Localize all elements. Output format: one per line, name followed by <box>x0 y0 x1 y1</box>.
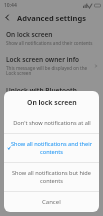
staticText: Show all notifications but hide contents <box>4 169 99 185</box>
staticText: Show all notifications and their content… <box>4 140 99 156</box>
button[interactable]: Toggle off <box>83 127 98 135</box>
staticText: Lock screen owner info <box>6 55 80 64</box>
button[interactable]: Lock screen owner info <box>0 50 103 81</box>
button[interactable]: Smart cover mode <box>0 115 103 146</box>
staticText: Cancel <box>42 198 61 206</box>
button[interactable]: Show all notifications but hide contents <box>4 163 99 191</box>
staticText: Lock or unlock the phone automatically u… <box>6 130 80 142</box>
staticText: Unlock with Bluetooth device <box>6 86 91 104</box>
staticText: Advanced settings <box>17 13 86 23</box>
staticText: This message will be displayed on the Lo… <box>6 65 91 77</box>
button[interactable]: Show all notifications and their content… <box>4 134 99 162</box>
button[interactable]: Cancel <box>4 192 99 212</box>
staticText: Limit touch gestures when placed in a po… <box>6 161 80 173</box>
staticText: Pocket mode <box>6 151 48 160</box>
button[interactable]: On lock screen <box>0 25 103 50</box>
staticText: 10:44 <box>4 2 17 9</box>
staticText: On lock screen <box>6 30 53 39</box>
staticText: Smart cover mode <box>6 120 64 129</box>
button[interactable]: Don't show notifications at all <box>4 113 99 133</box>
button[interactable]: Pocket mode <box>0 146 103 177</box>
button[interactable]: Back <box>0 10 15 25</box>
staticText: Don't show notifications at all <box>13 119 91 127</box>
button[interactable]: Unlock with Bluetooth device <box>0 81 103 115</box>
button[interactable]: Toggle on <box>83 158 98 166</box>
staticText: On lock screen <box>27 98 77 107</box>
staticText: Show all notifications and their content… <box>6 40 93 46</box>
